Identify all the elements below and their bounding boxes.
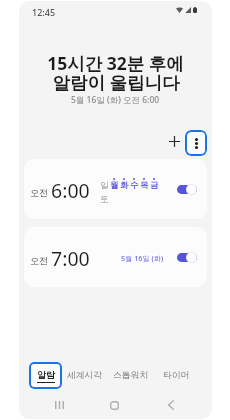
- staticText: 알람: [37, 369, 55, 380]
- button[interactable]: 홈: [103, 394, 125, 416]
- staticText: 6:00: [51, 177, 90, 204]
- staticText: 5월 16일 (화): [121, 253, 164, 263]
- staticText: 오전: [30, 255, 48, 266]
- button[interactable]: 타이머: [163, 365, 190, 386]
- staticText: 월: [110, 180, 119, 191]
- button[interactable]: 알람: [29, 362, 62, 389]
- staticText: 스톱워치: [113, 370, 149, 381]
- staticText: 타이머: [163, 370, 190, 381]
- button[interactable]: 최근 앱: [48, 394, 70, 416]
- button[interactable]: 알람 추가: [164, 131, 184, 151]
- staticText: 금: [150, 180, 159, 191]
- staticText: 세계시각: [67, 370, 103, 381]
- button[interactable]: 알람 켜기/끄기: [177, 252, 197, 263]
- staticText: 수: [130, 180, 139, 191]
- button[interactable]: 스톱워치: [113, 365, 149, 386]
- staticText: 12:45: [32, 6, 56, 18]
- button[interactable]: 세계시각: [67, 365, 103, 386]
- staticText: 목: [140, 180, 149, 191]
- staticText: 5월 16일 (화) 오전 6:00: [71, 94, 160, 106]
- staticText: 알람이 울립니다: [52, 70, 180, 94]
- button[interactable]: 알람 켜기/끄기: [177, 184, 197, 195]
- button[interactable]: 뒤로: [160, 394, 182, 416]
- staticText: 15시간 32분 후에: [47, 51, 184, 75]
- staticText: 일: [100, 180, 109, 191]
- staticText: 화: [120, 180, 129, 191]
- button[interactable]: 더보기 옵션: [185, 130, 207, 156]
- staticText: 오전: [30, 187, 48, 198]
- staticText: 7:00: [51, 245, 90, 272]
- button[interactable]: 오전: [24, 227, 207, 287]
- staticText: 토: [100, 194, 109, 205]
- button[interactable]: 오전: [24, 159, 207, 219]
